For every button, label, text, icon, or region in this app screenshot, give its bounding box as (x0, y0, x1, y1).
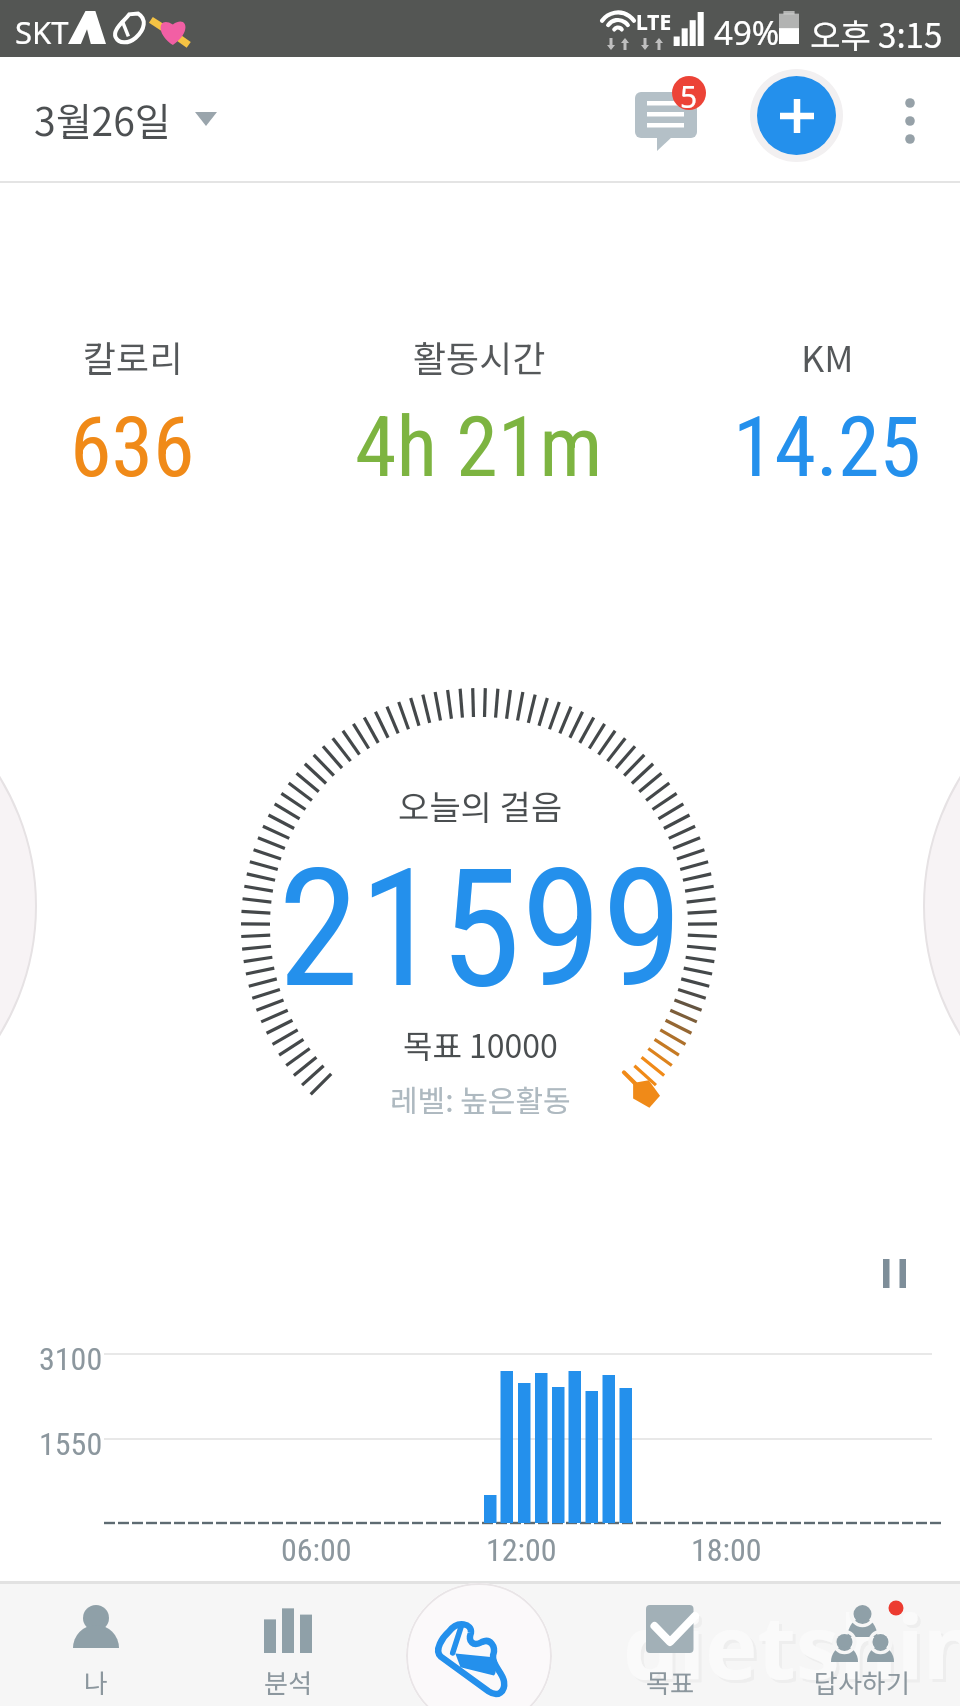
staticText: 답사하기 (814, 1663, 910, 1701)
staticText: 오늘의 걸음 (398, 781, 563, 830)
staticText: 오후 3:15 (810, 10, 943, 58)
staticText: 나 (84, 1663, 108, 1701)
staticText: 3월26일 (34, 91, 171, 147)
staticText: dietshin (626, 1588, 960, 1706)
staticText: 칼로리 (83, 330, 183, 382)
button[interactable]: 3월26일 (34, 84, 217, 154)
button[interactable]: 답사하기 (766, 1584, 958, 1706)
button[interactable]: 칼로리 (0, 330, 302, 496)
staticText: 636 (70, 398, 195, 496)
button[interactable]: 활동시간 (309, 330, 649, 496)
staticText: 21599 (278, 833, 683, 1025)
staticText: LTE (636, 8, 672, 37)
staticText: 목표 (646, 1663, 694, 1701)
staticText: 1550 (39, 1425, 103, 1463)
button[interactable]: Pause (871, 1247, 919, 1301)
staticText: 49% (714, 10, 780, 55)
button[interactable]: Add (757, 76, 836, 155)
staticText: 레벨: 높은활동 (390, 1077, 571, 1120)
staticText: 4h 21m (355, 398, 603, 496)
staticText: SKT (15, 11, 69, 53)
staticText: 18:00 (691, 1531, 762, 1569)
button[interactable]: 분석 (192, 1584, 384, 1706)
button[interactable]: Messages (626, 68, 718, 164)
staticText: 5 (680, 76, 698, 117)
button[interactable]: 나 (0, 1584, 192, 1706)
staticText: 14.25 (733, 398, 922, 496)
button[interactable]: 목표 (574, 1584, 766, 1706)
button[interactable]: More options (874, 75, 946, 147)
staticText: dietshin (623, 1585, 960, 1705)
staticText: 12:00 (486, 1531, 557, 1569)
staticText: 활동시간 (413, 330, 546, 382)
button[interactable]: KM (657, 330, 960, 496)
staticText: 06:00 (281, 1531, 352, 1569)
staticText: 분석 (264, 1663, 312, 1701)
staticText: 목표 10000 (403, 1021, 558, 1067)
staticText: 3100 (39, 1340, 103, 1378)
staticText: KM (801, 330, 854, 382)
button[interactable]: Steps (406, 1583, 552, 1706)
